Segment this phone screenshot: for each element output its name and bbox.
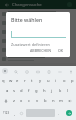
staticText: Changensuche [12, 2, 42, 8]
staticText: f [28, 88, 30, 94]
button[interactable]: Backspace [65, 96, 75, 106]
staticText: y [39, 78, 42, 84]
button[interactable]: v [33, 96, 41, 106]
button[interactable]: w [7, 76, 14, 86]
staticText: d [20, 88, 23, 94]
button[interactable]: u [44, 76, 52, 86]
staticText: j [51, 88, 53, 94]
staticText: l [67, 88, 69, 94]
staticText: ?123 [3, 111, 10, 115]
button[interactable]: t [28, 76, 36, 86]
staticText: s [13, 88, 16, 94]
button[interactable]: Account [66, 1, 73, 8]
button[interactable]: . [56, 107, 62, 119]
staticText: c [28, 98, 31, 104]
staticText: g [35, 88, 38, 94]
staticText: p [71, 78, 74, 84]
button[interactable]: r [21, 76, 28, 86]
button[interactable]: x [17, 96, 25, 106]
staticText: i [55, 78, 57, 84]
staticText: k [59, 88, 62, 94]
button[interactable]: s [11, 86, 18, 96]
button[interactable] [0, 36, 76, 45]
button[interactable]: o [60, 76, 68, 86]
staticText: z [13, 98, 15, 104]
button[interactable]: Google [2, 68, 8, 74]
button[interactable]: Settings [56, 68, 63, 75]
staticText: r [24, 78, 26, 84]
button[interactable]: g [32, 86, 40, 96]
staticText: w [9, 78, 13, 84]
button[interactable]: , [12, 107, 18, 119]
staticText: Zusatzwert definieren [11, 42, 50, 47]
button[interactable]: OK [56, 47, 66, 54]
staticText: o [63, 78, 66, 84]
staticText: h [43, 88, 46, 94]
button[interactable]: ABBRECHEN [28, 47, 54, 54]
button[interactable] [0, 18, 76, 27]
button[interactable] [0, 54, 76, 63]
staticText: ABBRECHEN [30, 48, 52, 53]
button[interactable]: d [18, 86, 25, 96]
button[interactable] [0, 27, 76, 36]
button[interactable]: Stickers [23, 68, 30, 75]
button[interactable]: n [49, 96, 57, 106]
button[interactable]: Back [3, 1, 10, 8]
button[interactable]: y [36, 76, 44, 86]
button[interactable]: Voice input [67, 68, 74, 75]
button[interactable]: Emoji [18, 107, 25, 119]
staticText: n [52, 98, 55, 104]
button[interactable]: h [40, 86, 48, 96]
staticText: q [2, 78, 5, 84]
staticText: e [16, 78, 19, 84]
staticText: t [31, 78, 33, 84]
staticText: a [6, 88, 9, 94]
button[interactable]: p [68, 76, 76, 86]
staticText: u [47, 78, 50, 84]
button[interactable]: c [25, 96, 33, 106]
button[interactable]: Clipboard [45, 68, 52, 75]
button[interactable]: i [52, 76, 60, 86]
button[interactable]: GIF [34, 68, 41, 75]
button[interactable]: b [41, 96, 49, 106]
button[interactable]: j [48, 86, 56, 96]
staticText: x [20, 98, 23, 104]
staticText: , [14, 111, 16, 116]
staticText: . [58, 111, 60, 116]
button[interactable]: k [56, 86, 64, 96]
button[interactable]: q [0, 76, 7, 86]
button[interactable]: f [25, 86, 32, 96]
staticText: b [44, 98, 47, 104]
button[interactable] [0, 45, 76, 54]
button[interactable]: e [14, 76, 21, 86]
staticText: v [36, 98, 39, 104]
staticText: m [59, 98, 63, 104]
button[interactable]: Search [12, 68, 19, 75]
button[interactable]: m [57, 96, 65, 106]
button[interactable]: Shift [1, 96, 10, 106]
staticText: OK [58, 48, 64, 53]
button[interactable]: z [10, 96, 17, 106]
button[interactable]: ?123 [1, 107, 12, 119]
staticText: Bitte wählen [11, 16, 43, 23]
button[interactable]: a [4, 86, 11, 96]
button[interactable]: l [64, 86, 72, 96]
button[interactable] [0, 9, 76, 18]
button[interactable]: Enter [62, 107, 75, 119]
